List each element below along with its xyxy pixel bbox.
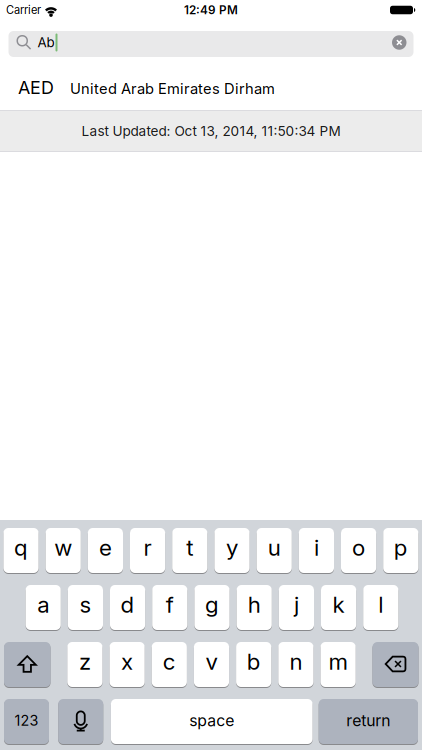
staticText: y — [226, 534, 238, 561]
button[interactable]: u — [257, 527, 292, 573]
staticText: l — [378, 591, 383, 618]
button[interactable]: Shift — [4, 641, 50, 687]
button[interactable]: c — [152, 641, 187, 687]
staticText: a — [37, 591, 49, 618]
button[interactable]: j — [279, 584, 314, 630]
staticText: 123 — [14, 712, 38, 729]
button[interactable]: Dictate — [58, 698, 103, 744]
button[interactable]: m — [320, 641, 356, 687]
staticText: j — [294, 591, 299, 618]
button[interactable]: Delete — [372, 641, 418, 687]
button[interactable]: q — [3, 527, 39, 573]
button[interactable]: Search field — [8, 31, 413, 57]
staticText: space — [189, 711, 234, 730]
button[interactable]: i — [299, 527, 334, 573]
button[interactable]: t — [172, 527, 207, 573]
button[interactable]: r — [130, 527, 165, 573]
staticText: c — [163, 648, 176, 675]
staticText: AED — [18, 77, 54, 98]
staticText: q — [14, 534, 28, 561]
staticText: Ab — [37, 34, 54, 50]
button[interactable]: k — [321, 584, 356, 630]
button[interactable]: w — [46, 527, 81, 573]
staticText: b — [247, 648, 261, 675]
button[interactable]: d — [110, 584, 145, 630]
staticText: k — [333, 591, 345, 618]
button[interactable]: z — [67, 641, 102, 687]
staticText: i — [314, 534, 319, 561]
button[interactable]: Numbers — [4, 698, 49, 744]
button[interactable]: v — [194, 641, 229, 687]
staticText: Last Updated: Oct 13, 2014, 11:50:34 PM — [81, 123, 340, 139]
button[interactable]: g — [194, 584, 230, 630]
staticText: z — [79, 648, 91, 675]
staticText: h — [248, 591, 261, 618]
staticText: Carrier — [6, 3, 41, 17]
button[interactable]: Clear text — [392, 35, 406, 50]
button[interactable]: space — [111, 698, 313, 744]
staticText: n — [289, 648, 302, 675]
button[interactable]: b — [236, 641, 271, 687]
button[interactable]: Return — [319, 698, 418, 744]
button[interactable]: o — [341, 527, 376, 573]
staticText: p — [394, 534, 408, 561]
button[interactable]: s — [68, 584, 103, 630]
staticText: e — [99, 534, 112, 561]
staticText: f — [166, 591, 174, 618]
staticText: g — [205, 591, 219, 618]
button[interactable]: p — [383, 527, 418, 573]
staticText: v — [205, 648, 217, 675]
staticText: d — [121, 591, 135, 618]
button[interactable]: f — [152, 584, 187, 630]
staticText: x — [121, 648, 133, 675]
staticText: r — [144, 534, 152, 561]
button[interactable]: x — [109, 641, 145, 687]
button[interactable]: e — [88, 527, 123, 573]
button[interactable]: a — [26, 584, 61, 630]
staticText: s — [79, 591, 91, 618]
staticText: u — [268, 534, 281, 561]
button[interactable]: AED — [0, 65, 422, 110]
button[interactable]: l — [363, 584, 398, 630]
staticText: United Arab Emirates Dirham — [70, 80, 275, 97]
staticText: w — [54, 534, 72, 561]
staticText: return — [346, 711, 390, 730]
staticText: o — [352, 534, 365, 561]
staticText: t — [186, 534, 193, 561]
button[interactable]: y — [214, 527, 250, 573]
button[interactable]: h — [237, 584, 272, 630]
staticText: m — [329, 648, 348, 675]
staticText: 12:49 PM — [184, 3, 238, 17]
button[interactable]: n — [278, 641, 313, 687]
